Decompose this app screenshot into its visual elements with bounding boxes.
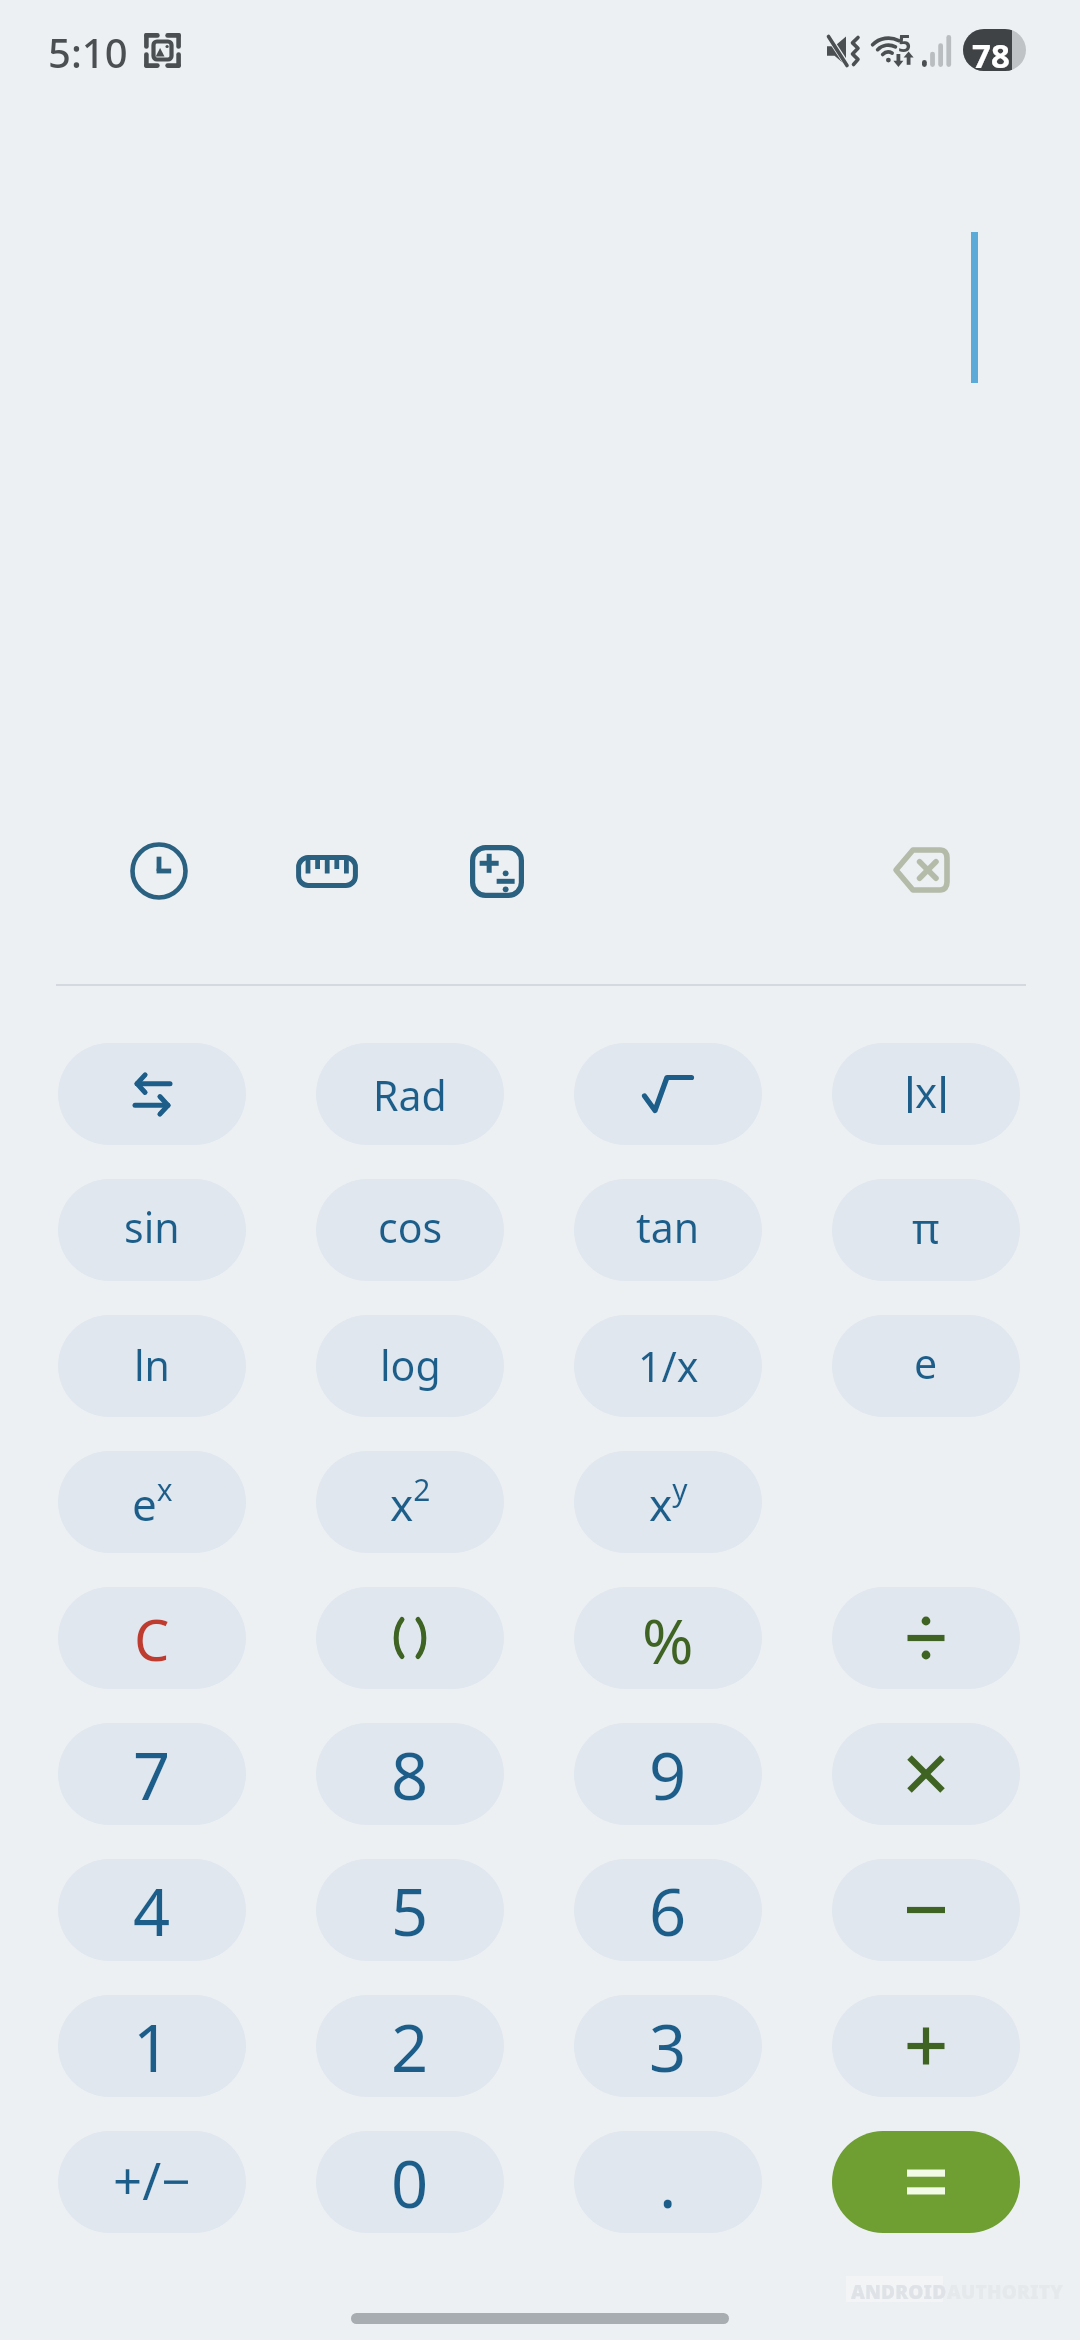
button[interactable]: x2: [316, 1451, 504, 1553]
staticText: 8: [391, 1731, 429, 1820]
staticText: +/−: [113, 2145, 191, 2214]
button[interactable]: 4: [58, 1859, 246, 1961]
button[interactable]: Parentheses: [316, 1587, 504, 1689]
button[interactable]: Plus: [832, 1995, 1020, 2097]
staticText: 1/x: [638, 1338, 699, 1394]
staticText: ex: [132, 1469, 173, 1534]
button[interactable]: Multiply: [832, 1723, 1020, 1825]
button[interactable]: Minus: [832, 1859, 1020, 1961]
button[interactable]: +/−: [58, 2131, 246, 2233]
staticText: 9: [649, 1731, 687, 1820]
staticText: 4: [133, 1867, 171, 1956]
staticText: 5: [391, 1867, 429, 1956]
button[interactable]: xy: [574, 1451, 762, 1553]
staticText: xy: [649, 1469, 688, 1534]
button[interactable]: 0: [316, 2131, 504, 2233]
button[interactable]: e: [832, 1315, 1020, 1417]
button[interactable]: Rad: [316, 1043, 504, 1145]
staticText: sin: [124, 1199, 180, 1255]
staticText: log: [380, 1337, 441, 1393]
button[interactable]: Scientific keypad: [470, 845, 524, 898]
staticText: AUTHORITY: [947, 2279, 1063, 2305]
button[interactable]: π: [832, 1179, 1020, 1281]
staticText: ANDROID: [851, 2279, 947, 2305]
button[interactable]: 1: [58, 1995, 246, 2097]
button[interactable]: 6: [574, 1859, 762, 1961]
staticText: C: [134, 1601, 170, 1677]
staticText: 0: [391, 2139, 429, 2228]
button[interactable]: tan: [574, 1179, 762, 1281]
button[interactable]: 9: [574, 1723, 762, 1825]
staticText: cos: [378, 1199, 443, 1255]
staticText: 1: [133, 2003, 171, 2092]
staticText: %: [642, 1598, 694, 1682]
staticText: Rad: [373, 1067, 447, 1123]
button[interactable]: 2: [316, 1995, 504, 2097]
staticText: 5:10: [48, 25, 128, 79]
staticText: e: [914, 1335, 938, 1391]
button[interactable]: ex: [58, 1451, 246, 1553]
button[interactable]: %: [574, 1587, 762, 1689]
button[interactable]: Square root: [574, 1043, 762, 1145]
button[interactable]: ln: [58, 1315, 246, 1417]
button[interactable]: log: [316, 1315, 504, 1417]
staticText: 3: [649, 2003, 687, 2092]
staticText: π: [912, 1199, 940, 1256]
button[interactable]: Divide: [832, 1587, 1020, 1689]
staticText: .: [659, 2139, 677, 2228]
staticText: 78: [972, 33, 1010, 78]
button[interactable]: 8: [316, 1723, 504, 1825]
staticText: 5: [898, 27, 912, 58]
button[interactable]: Equals: [832, 2131, 1020, 2233]
button[interactable]: 1/x: [574, 1315, 762, 1417]
staticText: ln: [134, 1337, 170, 1393]
button[interactable]: History: [130, 842, 188, 900]
staticText: 2: [391, 2003, 429, 2092]
staticText: tan: [636, 1199, 700, 1255]
button[interactable]: Backspace: [893, 847, 950, 893]
staticText: x: [915, 1063, 938, 1120]
button[interactable]: C: [58, 1587, 246, 1689]
button[interactable]: 3: [574, 1995, 762, 2097]
staticText: 6: [649, 1867, 687, 1956]
staticText: x2: [390, 1469, 431, 1534]
button[interactable]: sin: [58, 1179, 246, 1281]
staticText: 7: [133, 1731, 171, 1820]
button[interactable]: 5: [316, 1859, 504, 1961]
button[interactable]: cos: [316, 1179, 504, 1281]
button[interactable]: Unit converter: [296, 855, 358, 888]
button[interactable]: 7: [58, 1723, 246, 1825]
button[interactable]: Swap: [58, 1043, 246, 1145]
button[interactable]: Absolute value: [832, 1043, 1020, 1145]
button[interactable]: .: [574, 2131, 762, 2233]
